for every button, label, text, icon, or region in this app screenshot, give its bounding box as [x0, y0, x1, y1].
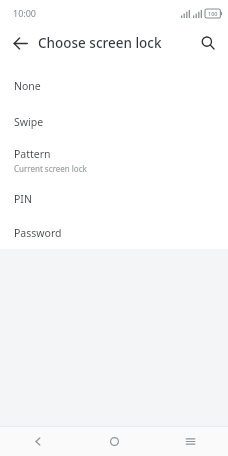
button[interactable]: Back [6, 29, 34, 57]
button[interactable]: Password [0, 217, 228, 249]
staticText: 100 [208, 10, 218, 17]
button[interactable]: Swipe [0, 104, 228, 140]
button[interactable]: Home [76, 427, 152, 456]
button[interactable]: Search [194, 29, 222, 57]
button[interactable]: Pattern [0, 140, 228, 181]
staticText: Password [14, 226, 62, 240]
button[interactable]: Back [0, 427, 76, 456]
staticText: 10:00 [13, 7, 37, 19]
staticText: None [14, 79, 41, 93]
button[interactable]: PIN [0, 181, 228, 217]
button[interactable]: Recent apps [152, 427, 228, 456]
button[interactable]: None [0, 68, 228, 104]
staticText: Pattern [14, 147, 51, 161]
staticText: PIN [14, 192, 32, 206]
staticText: Current screen lock [14, 163, 87, 174]
staticText: Swipe [14, 115, 44, 129]
staticText: Choose screen lock [38, 34, 162, 52]
